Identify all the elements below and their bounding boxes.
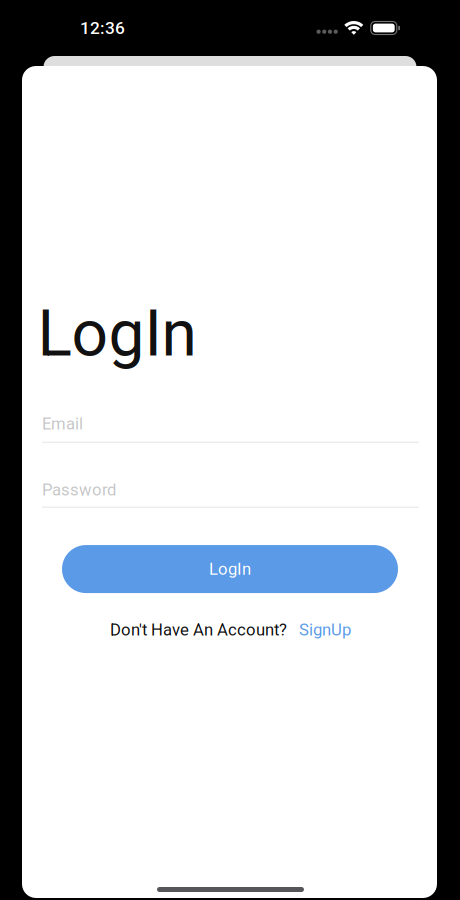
- staticText: LogIn: [209, 559, 251, 579]
- button[interactable]: SignUp: [299, 620, 351, 640]
- button[interactable]: Password: [42, 480, 419, 508]
- staticText: Password: [42, 480, 116, 499]
- staticText: 12:36: [80, 18, 125, 38]
- button[interactable]: LogIn: [62, 545, 398, 593]
- staticText: LogIn: [37, 296, 196, 371]
- button[interactable]: Email: [42, 414, 419, 443]
- staticText: Email: [42, 414, 83, 433]
- staticText: Don't Have An Account?: [110, 620, 287, 640]
- staticText: SignUp: [299, 620, 351, 640]
